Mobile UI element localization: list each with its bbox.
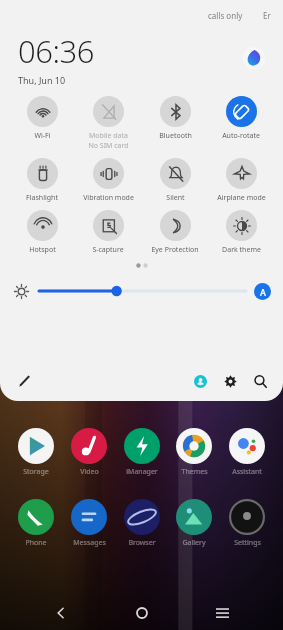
- staticText: S-capture: [92, 245, 124, 255]
- staticText: Thu, Jun 10: [18, 74, 66, 86]
- button[interactable]: Settings: [220, 371, 240, 391]
- button[interactable]: Bluetooth: [144, 96, 206, 141]
- staticText: Vibration mode: [83, 193, 134, 203]
- button[interactable]: Dark theme: [210, 210, 272, 255]
- button[interactable]: Settings: [222, 499, 272, 548]
- staticText: Mobile data: [89, 131, 128, 141]
- staticText: Er: [263, 10, 271, 21]
- button[interactable]: Mobile data: [77, 96, 139, 151]
- staticText: Settings: [234, 538, 261, 548]
- button[interactable]: Vibration mode: [77, 158, 139, 203]
- button[interactable]: Brightness: [39, 281, 246, 301]
- staticText: Browser: [128, 538, 156, 548]
- button[interactable]: Hotspot: [11, 210, 73, 255]
- staticText: Silent: [166, 193, 185, 203]
- staticText: iManager: [126, 467, 158, 477]
- staticText: Gallery: [182, 538, 206, 548]
- button[interactable]: S-capture: [77, 210, 139, 255]
- staticText: 06:36: [18, 30, 94, 72]
- button[interactable]: Phone: [11, 499, 61, 548]
- staticText: Themes: [181, 467, 208, 477]
- staticText: Storage: [23, 467, 49, 477]
- button[interactable]: Video: [64, 428, 114, 477]
- button[interactable]: Account: [190, 371, 210, 391]
- staticText: calls only: [208, 10, 243, 21]
- button[interactable]: Wi-Fi: [11, 96, 73, 141]
- button[interactable]: Browser: [117, 499, 167, 548]
- staticText: Phone: [25, 538, 47, 548]
- button[interactable]: Edit: [14, 371, 34, 391]
- button[interactable]: Auto brightness: [254, 283, 271, 300]
- button[interactable]: Home: [122, 596, 162, 630]
- button[interactable]: Flashlight: [11, 158, 73, 203]
- button[interactable]: Recents: [202, 596, 242, 630]
- staticText: Hotspot: [29, 245, 56, 255]
- staticText: Flashlight: [26, 193, 58, 203]
- staticText: A: [260, 286, 266, 298]
- button[interactable]: iManager: [117, 428, 167, 477]
- button[interactable]: Messages: [64, 499, 114, 548]
- button[interactable]: Silent: [144, 158, 206, 203]
- button[interactable]: Airplane mode: [210, 158, 272, 203]
- button[interactable]: Auto-rotate: [210, 96, 272, 141]
- button[interactable]: Search: [250, 371, 270, 391]
- button[interactable]: Themes: [169, 428, 219, 477]
- staticText: No SIM card: [88, 141, 129, 151]
- staticText: Eye Protection: [151, 245, 199, 255]
- button[interactable]: Profile: [241, 45, 267, 71]
- staticText: Dark theme: [222, 245, 261, 255]
- staticText: Messages: [73, 538, 106, 548]
- button[interactable]: Assistant: [222, 428, 272, 477]
- staticText: Airplane mode: [217, 193, 266, 203]
- button[interactable]: Eye Protection: [144, 210, 206, 255]
- staticText: Video: [80, 467, 99, 477]
- staticText: Auto-rotate: [222, 131, 260, 141]
- button[interactable]: Storage: [11, 428, 61, 477]
- staticText: Assistant: [232, 467, 262, 477]
- staticText: Wi-Fi: [34, 131, 51, 141]
- staticText: Bluetooth: [159, 131, 192, 141]
- button[interactable]: Gallery: [169, 499, 219, 548]
- button[interactable]: Back: [41, 596, 81, 630]
